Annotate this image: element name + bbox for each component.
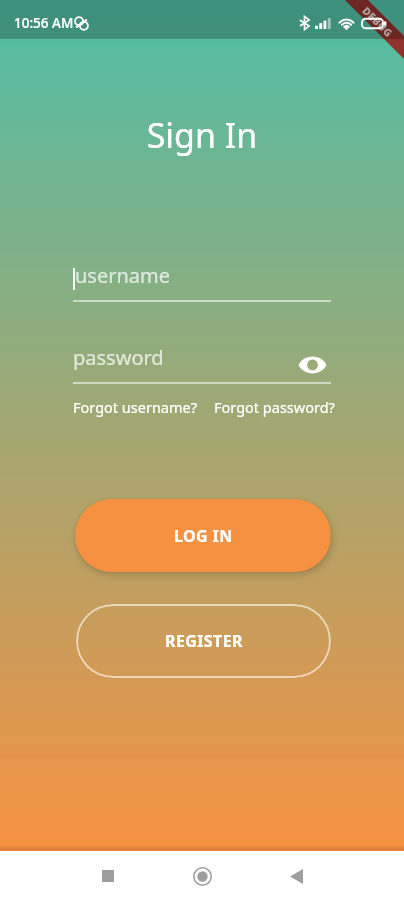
staticText: Sign In	[0, 112, 404, 158]
button[interactable]: Forgot username?	[73, 395, 198, 419]
button[interactable]: Forgot password?	[214, 395, 335, 419]
button[interactable]: Back	[272, 852, 320, 900]
staticText: REGISTER	[165, 630, 243, 652]
button[interactable]: Recent apps	[84, 852, 132, 900]
staticText: password	[73, 344, 164, 371]
staticText: DEBUG	[360, 4, 396, 40]
button[interactable]: REGISTER	[76, 604, 331, 678]
button[interactable]: Home	[178, 852, 226, 900]
staticText: 10:56 AM	[14, 14, 74, 32]
staticText: username	[75, 262, 171, 289]
button[interactable]: LOG IN	[75, 499, 331, 572]
button[interactable]: Show password	[296, 349, 328, 381]
staticText: LOG IN	[174, 525, 233, 547]
